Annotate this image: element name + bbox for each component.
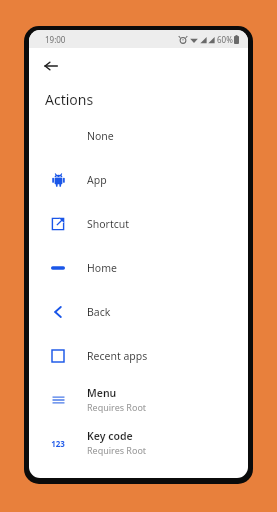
button[interactable]: Shortcut <box>29 202 248 246</box>
button[interactable]: Back <box>38 53 64 79</box>
button[interactable]: Recent apps <box>29 334 248 378</box>
staticText: Requires Root <box>87 401 147 413</box>
staticText: Key code <box>87 429 133 443</box>
staticText: App <box>87 173 107 187</box>
staticText: None <box>87 129 114 143</box>
staticText: 60% <box>217 34 233 45</box>
staticText: Back <box>87 305 111 319</box>
button[interactable]: Back <box>29 290 248 334</box>
staticText: Actions <box>45 90 94 109</box>
staticText: Requires Root <box>87 444 147 456</box>
button[interactable]: 123 <box>29 421 248 464</box>
staticText: Recent apps <box>87 349 148 363</box>
staticText: Home <box>87 261 117 275</box>
button[interactable]: Menu <box>29 378 248 421</box>
staticText: 123 <box>51 438 65 449</box>
staticText: Shortcut <box>87 217 130 231</box>
button[interactable]: App <box>29 158 248 202</box>
button[interactable]: None <box>29 114 248 158</box>
staticText: Menu <box>87 386 117 400</box>
staticText: 19:00 <box>45 34 66 45</box>
button[interactable]: Home <box>29 246 248 290</box>
